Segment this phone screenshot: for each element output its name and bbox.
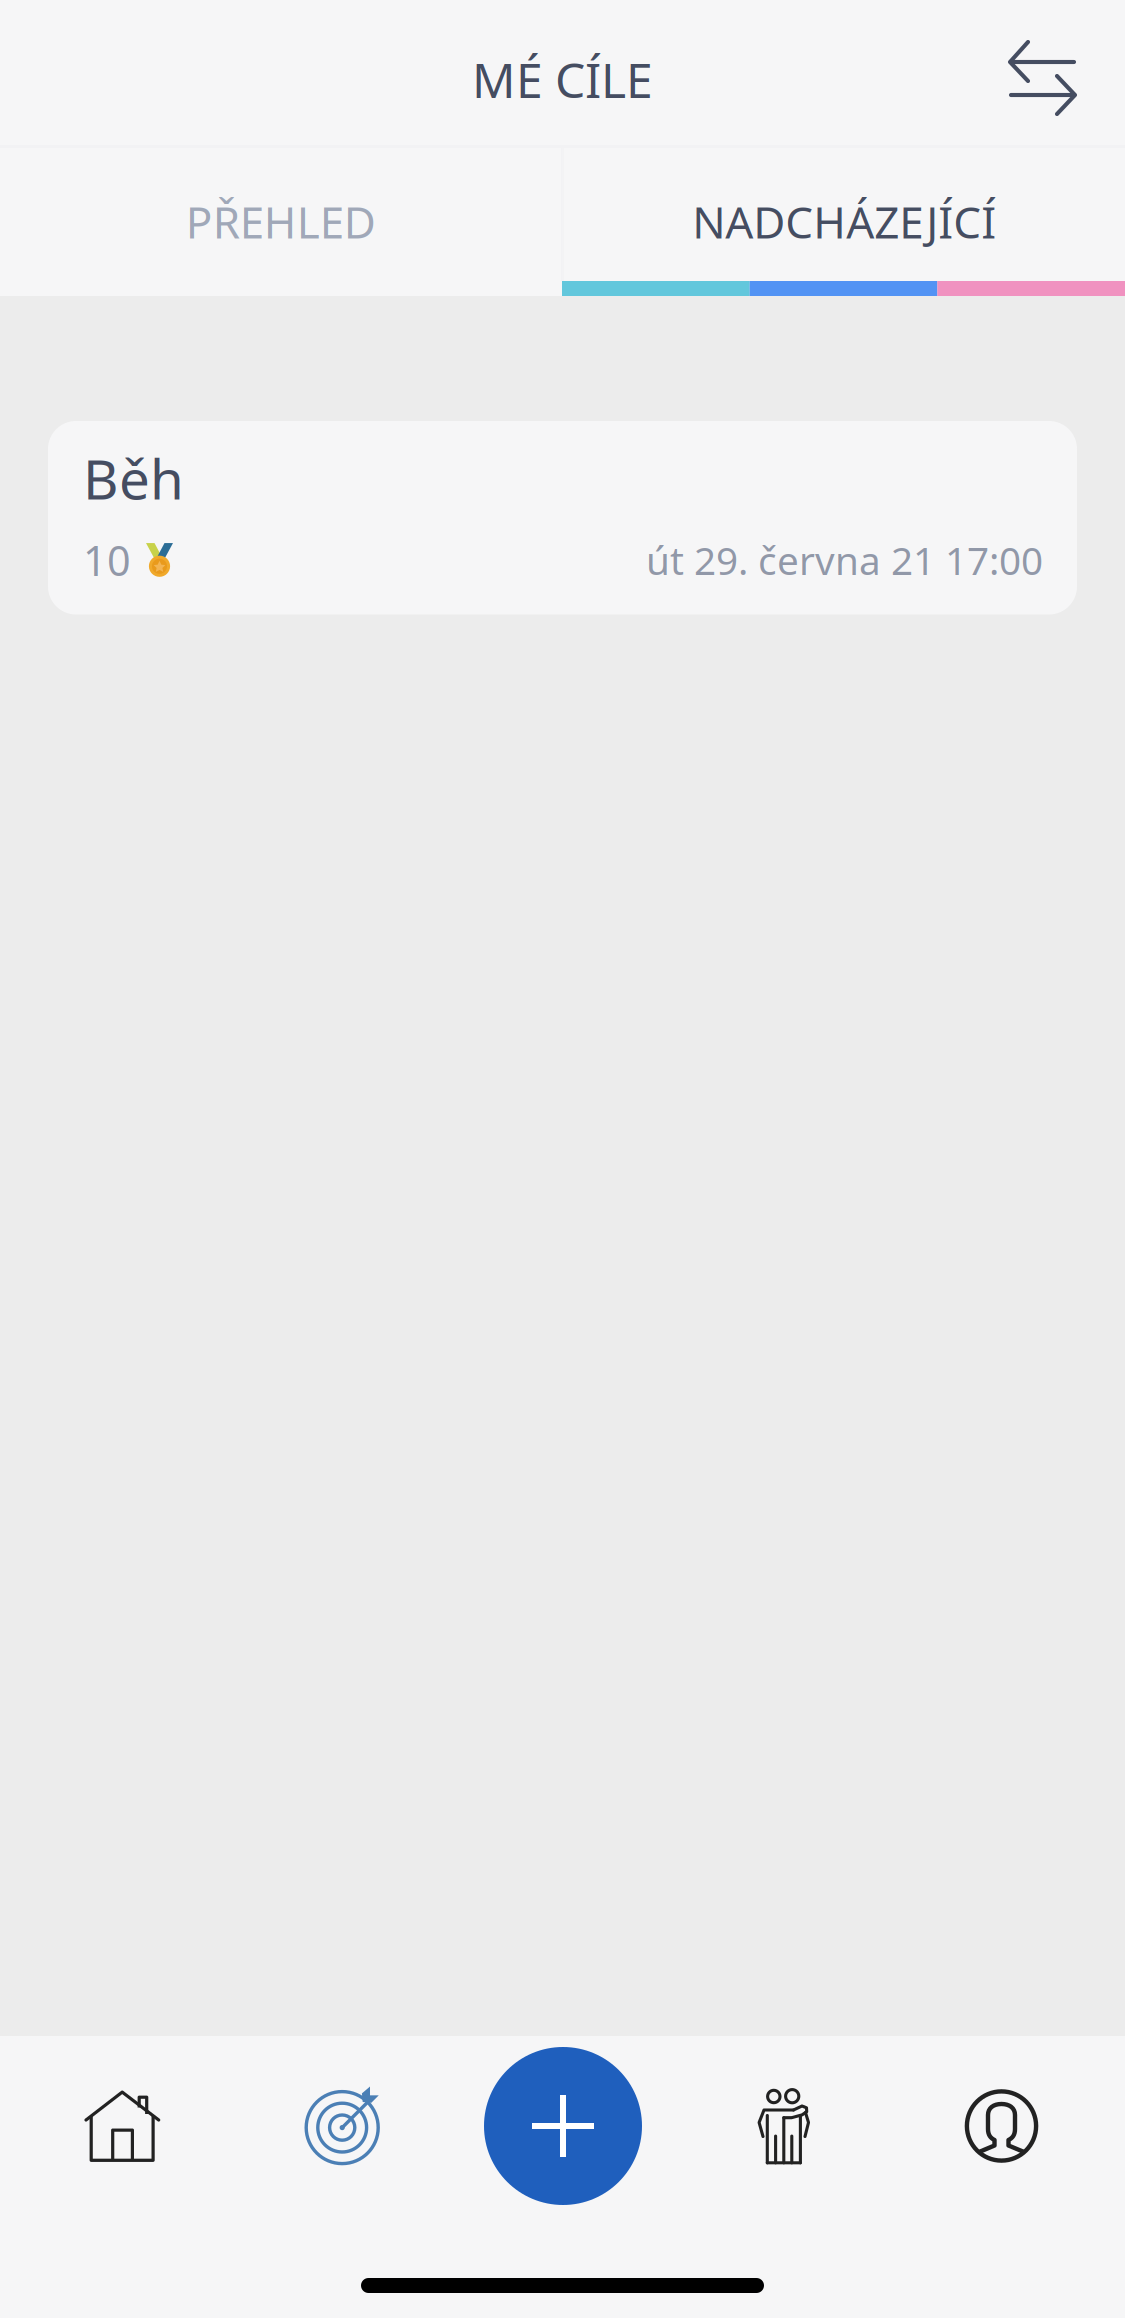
staticText: PŘEHLED [186, 192, 376, 251]
button[interactable]: Friends [690, 2047, 878, 2205]
staticText: 10 [83, 533, 131, 587]
staticText: út 29. června 21 17:00 [646, 534, 1043, 586]
button[interactable]: Home [0, 2047, 245, 2205]
staticText: Běh [83, 442, 184, 515]
staticText: MÉ CÍLE [472, 48, 653, 111]
button[interactable]: NADCHÁZEJÍCÍ [563, 148, 1125, 281]
button[interactable]: Profile [878, 2047, 1125, 2205]
staticText: NADCHÁZEJÍCÍ [692, 192, 996, 251]
button[interactable]: Běh [48, 421, 1077, 614]
button[interactable]: Goals [245, 2047, 436, 2205]
button[interactable]: Add [436, 2047, 690, 2205]
button[interactable]: PŘEHLED [0, 148, 561, 281]
button[interactable]: Switch view [980, 8, 1125, 137]
